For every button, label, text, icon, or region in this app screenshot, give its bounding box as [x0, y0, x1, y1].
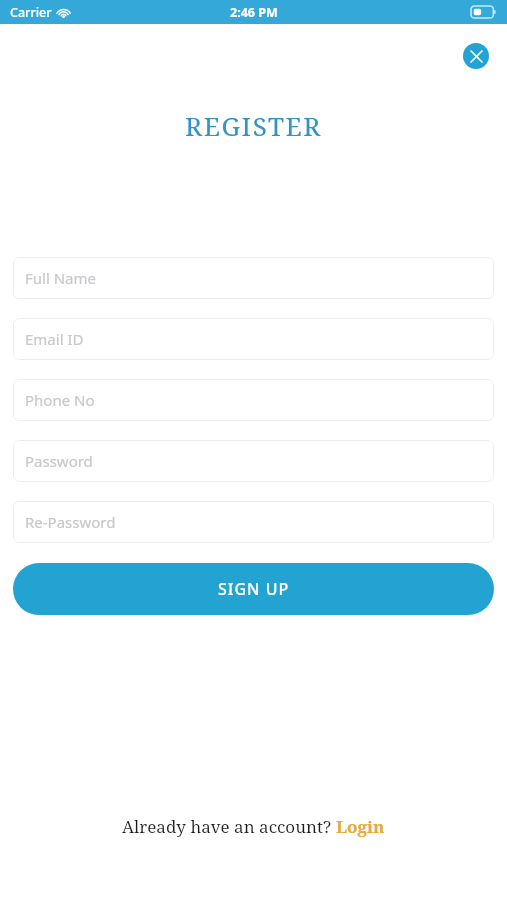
button[interactable]: Phone No: [13, 379, 494, 421]
button[interactable]: Email ID: [13, 318, 494, 360]
staticText: REGISTER: [185, 108, 322, 143]
staticText: 2:46 PM: [230, 4, 278, 21]
staticText: Re-Password: [25, 512, 116, 532]
staticText: Already have an account?: [122, 815, 336, 838]
button[interactable]: Password: [13, 440, 494, 482]
button[interactable]: Full Name: [13, 257, 494, 299]
staticText: Phone No: [25, 390, 95, 410]
staticText: Full Name: [25, 268, 96, 288]
staticText: Login: [336, 815, 385, 838]
staticText: Email ID: [25, 329, 84, 349]
staticText: SIGN UP: [218, 578, 290, 600]
staticText: Password: [25, 451, 93, 471]
button[interactable]: Login: [336, 815, 385, 838]
button[interactable]: Close: [463, 43, 489, 69]
button[interactable]: Re-Password: [13, 501, 494, 543]
button[interactable]: SIGN UP: [13, 563, 494, 615]
staticText: Carrier: [10, 4, 52, 21]
